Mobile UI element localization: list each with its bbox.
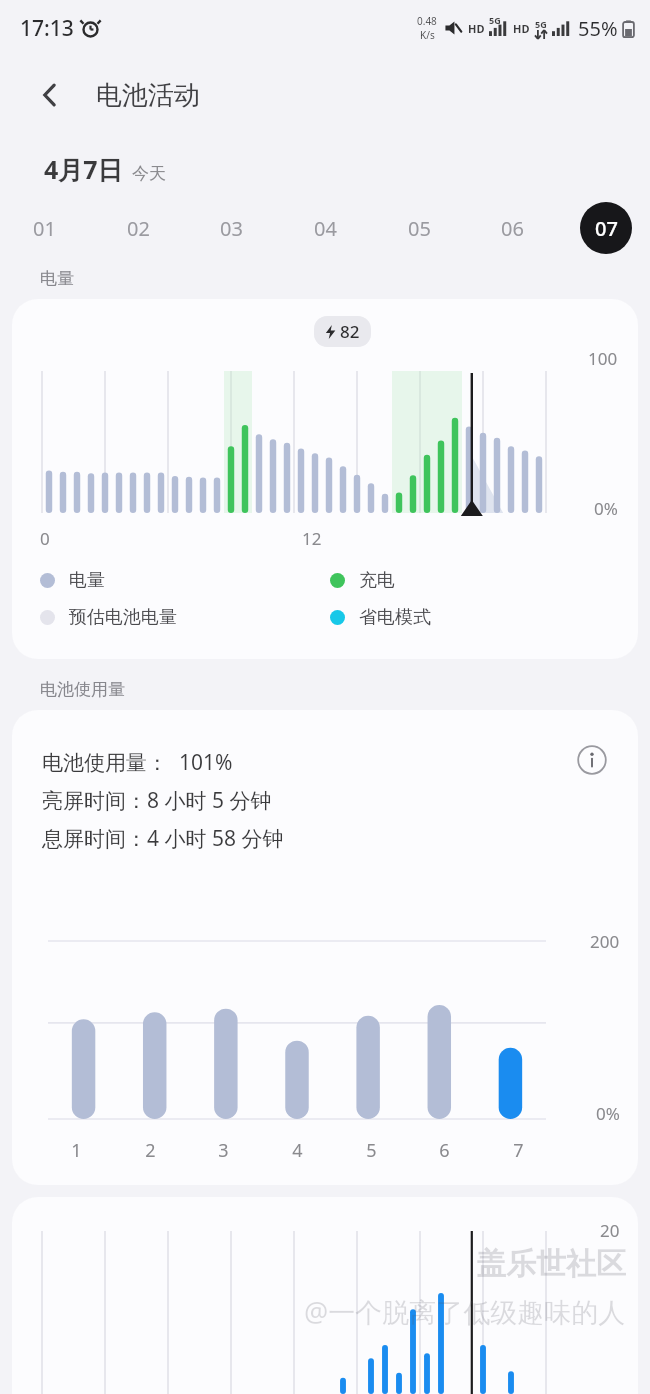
button[interactable]: 82 (12, 299, 638, 659)
button[interactable]: Info (570, 738, 614, 782)
button[interactable]: 电池使用量： 101% (12, 710, 638, 1185)
button[interactable]: 02 (112, 202, 164, 254)
staticText: HD (513, 21, 530, 36)
staticText: 电量 (69, 569, 105, 592)
staticText: 0% (594, 497, 618, 520)
button[interactable]: 20 (12, 1197, 638, 1394)
staticText: 5 (366, 1138, 377, 1163)
staticText: 电池使用量 (40, 679, 125, 700)
staticText: 12 (302, 527, 322, 550)
staticText: 01 (33, 215, 56, 242)
staticText: 1 (71, 1138, 82, 1163)
staticText: 0.48 (417, 14, 437, 28)
staticText: 3 (218, 1138, 229, 1163)
staticText: 息屏时间：4 小时 58 分钟 (42, 824, 284, 853)
staticText: 100 (588, 347, 618, 370)
button[interactable]: Back (26, 71, 74, 119)
staticText: 07 (595, 215, 618, 242)
button[interactable]: 03 (205, 202, 257, 254)
staticText: 5G (489, 14, 501, 26)
staticText: 05 (408, 215, 431, 242)
staticText: 预估电池电量 (69, 606, 177, 629)
staticText: 17:13 (20, 14, 74, 43)
staticText: 盖乐世社区 (476, 1245, 626, 1283)
staticText: 亮屏时间：8 小时 5 分钟 (42, 786, 272, 815)
staticText: K/s (420, 28, 435, 42)
staticText: 55% (578, 15, 618, 42)
staticText: 03 (220, 215, 243, 242)
staticText: 电量 (40, 268, 74, 289)
staticText: 4 (292, 1138, 303, 1163)
staticText: 2 (145, 1138, 156, 1163)
staticText: 20 (600, 1219, 620, 1242)
staticText: 04 (314, 215, 337, 242)
staticText: 充电 (359, 569, 395, 592)
staticText: 0 (40, 527, 50, 550)
staticText: 6 (439, 1138, 450, 1163)
staticText: 02 (127, 215, 150, 242)
staticText: HD (468, 21, 485, 36)
staticText: 电池使用量： 101% (42, 748, 233, 777)
staticText: 省电模式 (359, 606, 431, 629)
button[interactable]: 06 (486, 202, 538, 254)
staticText: 今天 (132, 163, 166, 184)
staticText: 7 (513, 1138, 524, 1163)
button[interactable]: 05 (393, 202, 445, 254)
button[interactable]: 01 (18, 202, 70, 254)
staticText: 06 (501, 215, 524, 242)
staticText: 82 (340, 320, 360, 343)
staticText: @一个脱离了低级趣味的人 (304, 1293, 626, 1330)
staticText: 5G (535, 18, 547, 30)
button[interactable]: 07 (580, 202, 632, 254)
staticText: 电池活动 (96, 79, 200, 112)
staticText: 200 (590, 930, 620, 953)
staticText: 0% (596, 1102, 620, 1125)
button[interactable]: 04 (299, 202, 351, 254)
staticText: 4月7日 (44, 152, 123, 186)
